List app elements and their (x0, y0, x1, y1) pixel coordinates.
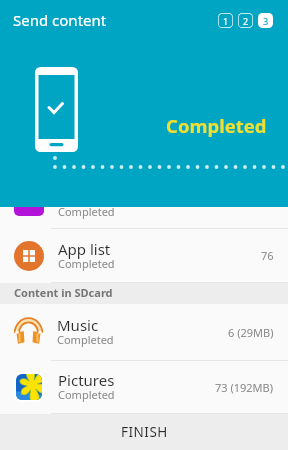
button[interactable]: Step 2 (238, 13, 253, 28)
staticText: 73 (192MB) (215, 380, 274, 395)
button[interactable]: Step 1 (218, 13, 233, 28)
staticText: Completed (58, 256, 115, 271)
staticText: Completed (57, 332, 114, 347)
staticText: Music (57, 315, 99, 335)
staticText: App list (58, 239, 111, 259)
staticText: Content in SDcard (14, 285, 113, 300)
button[interactable]: App list (0, 229, 288, 283)
staticText: FINISH (121, 423, 168, 441)
button[interactable]: Completed (0, 207, 288, 229)
staticText: 1 (223, 15, 229, 27)
staticText: Completed (58, 204, 115, 219)
staticText: 76 (261, 248, 274, 263)
button[interactable]: Music (0, 304, 288, 361)
button[interactable]: Step 3 (258, 13, 273, 28)
staticText: Completed (58, 387, 115, 402)
staticText: Completed (166, 113, 267, 138)
button[interactable]: Pictures (0, 361, 288, 414)
button[interactable]: FINISH (0, 414, 288, 450)
staticText: 6 (29MB) (228, 325, 274, 340)
staticText: Pictures (58, 370, 115, 390)
staticText: 2 (243, 15, 249, 27)
staticText: 3 (263, 15, 269, 27)
staticText: Send content (13, 10, 107, 30)
